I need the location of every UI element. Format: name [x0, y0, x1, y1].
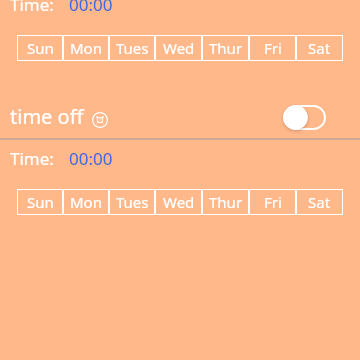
button[interactable]: Sun — [17, 189, 63, 215]
button[interactable]: Tues — [109, 35, 155, 61]
staticText: Time: — [10, 147, 54, 170]
button[interactable]: Time: — [0, 0, 360, 16]
button[interactable]: Fri — [249, 35, 296, 61]
other: Alarm — [92, 112, 108, 128]
staticText: Thur — [209, 192, 243, 212]
button[interactable]: Tues — [109, 189, 155, 215]
button[interactable]: Thur — [202, 35, 249, 61]
staticText: Fri — [264, 192, 282, 212]
staticText: Mon — [70, 192, 102, 212]
staticText: 00:00 — [69, 147, 113, 170]
staticText: Time: — [10, 0, 54, 16]
button[interactable]: Mon — [63, 35, 109, 61]
staticText: 00:00 — [69, 0, 113, 16]
staticText: Fri — [264, 38, 282, 58]
button[interactable]: Sat — [296, 35, 343, 61]
staticText: Sat — [308, 38, 331, 58]
staticText: Wed — [163, 192, 195, 212]
staticText: Wed — [163, 38, 195, 58]
staticText: Mon — [70, 38, 102, 58]
staticText: Sun — [27, 38, 54, 58]
button[interactable]: Wed — [155, 189, 202, 215]
button[interactable]: time off — [10, 103, 108, 130]
button[interactable]: Sun — [17, 35, 63, 61]
staticText: Tues — [116, 192, 149, 212]
button[interactable]: Enable alarm — [283, 104, 326, 130]
staticText: Tues — [116, 38, 149, 58]
button[interactable]: Wed — [155, 35, 202, 61]
button[interactable]: Sat — [296, 189, 343, 215]
button[interactable]: Thur — [202, 189, 249, 215]
staticText: Sat — [308, 192, 331, 212]
staticText: time off — [10, 103, 84, 130]
button[interactable]: Time: — [0, 147, 360, 170]
staticText: Thur — [209, 38, 243, 58]
button[interactable]: Mon — [63, 189, 109, 215]
button[interactable]: Fri — [249, 189, 296, 215]
staticText: Sun — [27, 192, 54, 212]
